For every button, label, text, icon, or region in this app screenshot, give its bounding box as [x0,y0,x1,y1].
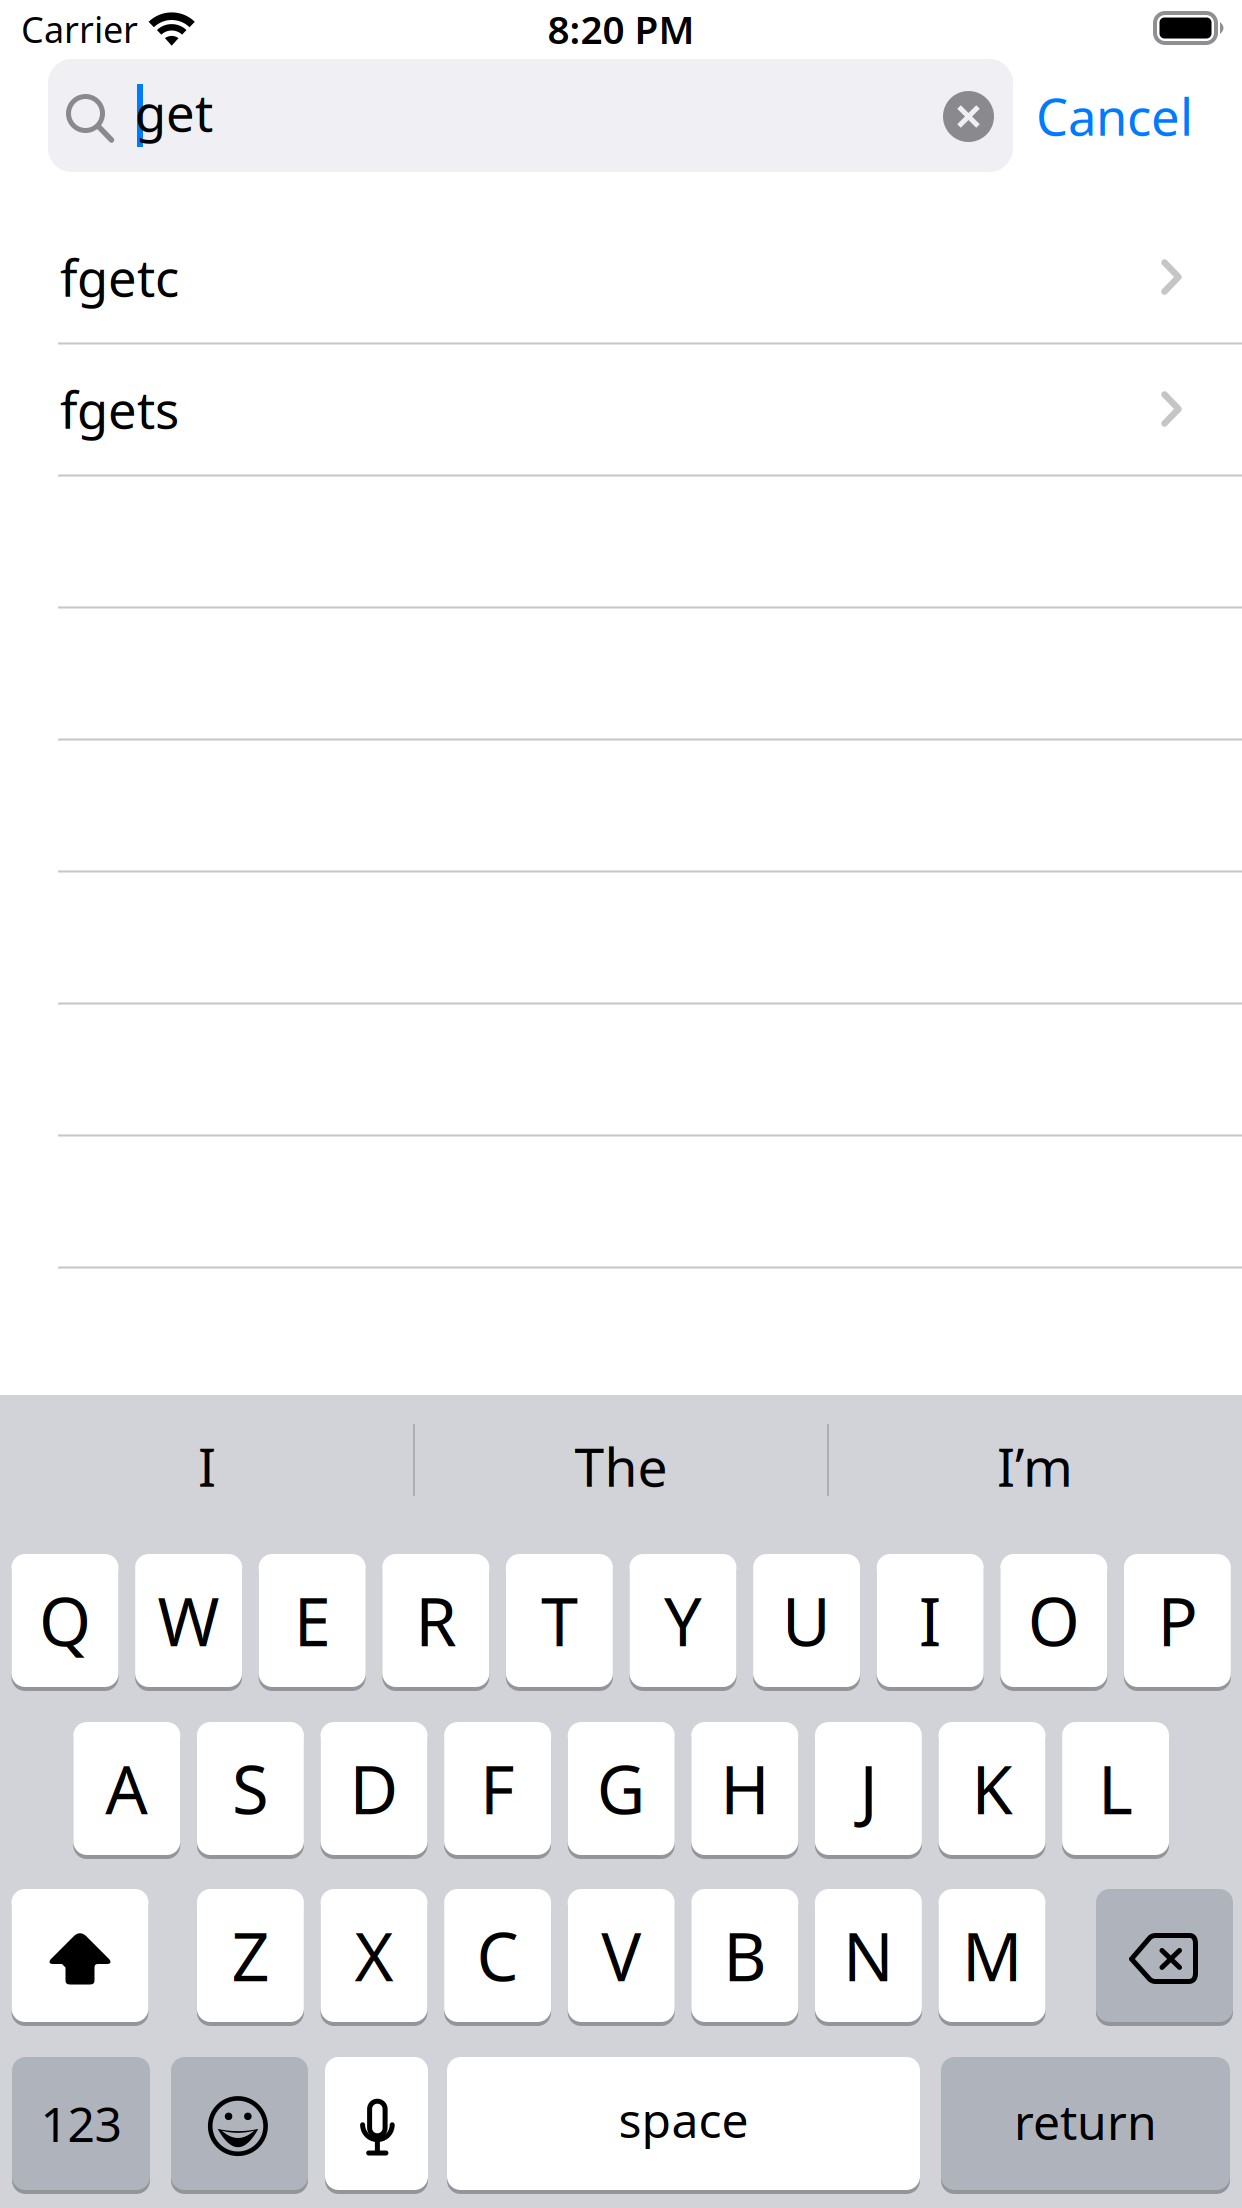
button[interactable]: Y [0,0,107,133]
button[interactable]: I [0,0,107,133]
staticText: B [723,1911,766,2000]
button[interactable]: Cancel [0,0,170,52]
button[interactable]: O [0,0,107,133]
staticText: K [971,1744,1012,1833]
staticText: M [962,1911,1022,2000]
button[interactable]: M [0,0,107,133]
button[interactable]: T [0,0,107,133]
staticText: Z [231,1911,269,2000]
button[interactable]: H [0,0,107,133]
button[interactable]: return [0,0,289,133]
button[interactable]: N [0,0,107,133]
button[interactable]: A [0,0,107,133]
staticText: Y [664,1576,702,1665]
staticText: G [597,1744,646,1833]
staticText: W [158,1576,220,1665]
button[interactable]: K [0,0,107,133]
button[interactable]: 123 [0,0,138,133]
staticText: R [415,1576,456,1665]
staticText: J [859,1744,877,1833]
button[interactable]: C [0,0,107,133]
button[interactable]: P [0,0,107,133]
staticText: Cancel [1036,82,1193,150]
staticText: N [843,1911,894,2000]
button[interactable]: Clear text [0,0,51,51]
button[interactable]: Z [0,0,107,133]
staticText: L [1098,1744,1133,1833]
button[interactable]: Shift [0,0,137,133]
button[interactable]: W [0,0,107,133]
button[interactable]: space [0,0,473,133]
staticText: C [477,1911,519,2000]
button[interactable]: fgets [0,343,1242,475]
staticText: 8:20 PM [547,3,694,55]
button[interactable]: J [0,0,107,133]
button[interactable]: Q [0,0,107,133]
staticText: space [618,2088,748,2151]
button[interactable]: R [0,0,107,133]
button[interactable]: S [0,0,107,133]
staticText: Carrier [21,5,138,53]
staticText: T [541,1576,578,1665]
button[interactable]: Dictation [0,0,103,133]
button[interactable]: D [0,0,107,133]
button[interactable]: L [0,0,107,133]
staticText: S [232,1744,269,1833]
staticText: P [1157,1576,1197,1665]
staticText: I’m [997,1431,1073,1501]
button[interactable]: U [0,0,107,133]
button[interactable]: fgetc [0,211,1242,343]
button[interactable]: E [0,0,107,133]
staticText: I [919,1576,942,1665]
staticText: X [354,1911,393,2000]
staticText: I [198,1431,216,1501]
button[interactable]: Emoji [0,0,137,133]
staticText: return [1014,2090,1157,2153]
button[interactable]: X [0,0,107,133]
button[interactable]: B [0,0,107,133]
button[interactable]: F [0,0,107,133]
staticText: 123 [40,2092,121,2155]
staticText: fgetc [60,243,179,311]
button[interactable]: Delete [0,0,137,133]
staticText: get [135,78,213,146]
button[interactable]: V [0,0,107,133]
staticText: Q [39,1576,91,1665]
staticText: The [574,1431,667,1501]
staticText: U [782,1576,831,1665]
staticText: E [294,1576,331,1665]
staticText: H [720,1744,769,1833]
staticText: D [349,1744,398,1833]
staticText: A [105,1744,148,1833]
staticText: O [1028,1576,1080,1665]
staticText: F [480,1744,515,1833]
button[interactable]: G [0,0,107,133]
staticText: V [601,1911,641,2000]
staticText: fgets [60,375,179,443]
